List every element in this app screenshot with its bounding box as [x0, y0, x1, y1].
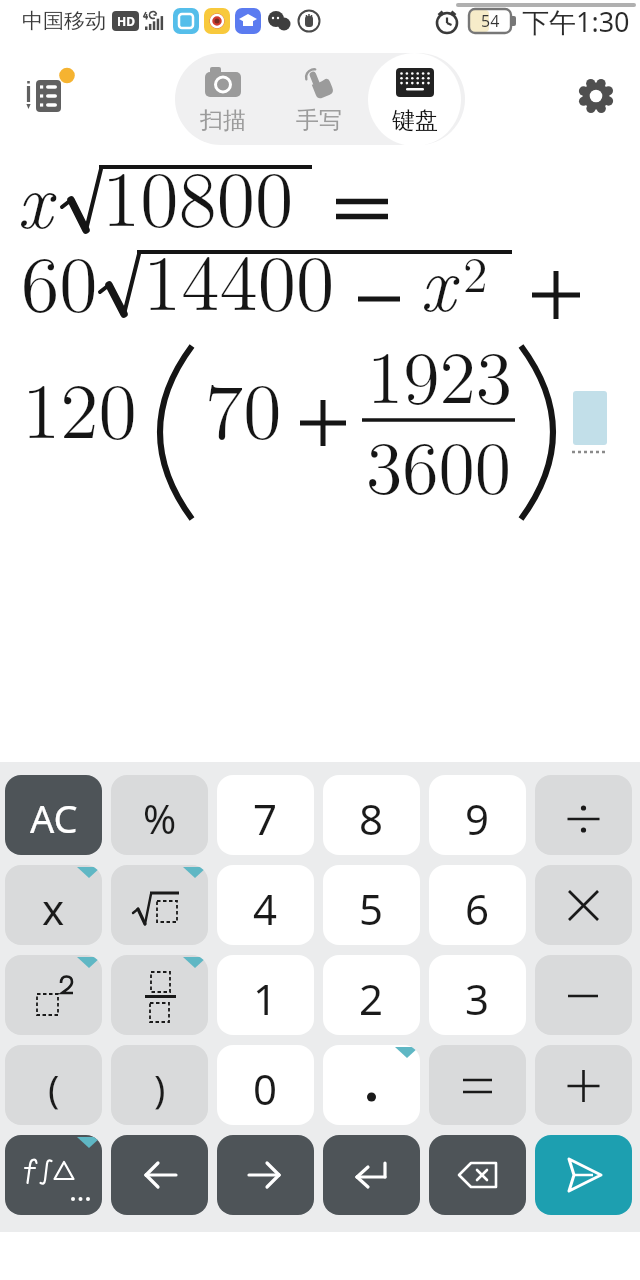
staticText: 手写: [296, 106, 342, 135]
button[interactable]: 8: [323, 775, 420, 855]
button[interactable]: 扫描: [175, 53, 271, 145]
staticText: HD: [117, 13, 135, 29]
staticText: 7: [253, 790, 278, 847]
staticText: 6: [465, 880, 490, 937]
staticText: 扫描: [200, 106, 246, 135]
staticText: %: [143, 791, 177, 845]
staticText: 中国移动: [22, 8, 106, 34]
button[interactable]: [111, 955, 208, 1035]
staticText: 54: [481, 10, 500, 32]
button[interactable]: [429, 1045, 526, 1125]
staticText: 9: [465, 790, 490, 847]
button[interactable]: [535, 955, 632, 1035]
button[interactable]: [20, 69, 72, 121]
button[interactable]: (: [5, 1045, 102, 1125]
button[interactable]: 手写: [271, 53, 367, 145]
button[interactable]: [577, 77, 615, 115]
button[interactable]: [5, 1135, 102, 1215]
button[interactable]: %: [111, 775, 208, 855]
button[interactable]: 7: [217, 775, 314, 855]
button[interactable]: 6: [429, 865, 526, 945]
button[interactable]: 9: [429, 775, 526, 855]
button[interactable]: 3: [429, 955, 526, 1035]
staticText: 8: [359, 790, 384, 847]
staticText: 下午1:30: [522, 3, 630, 40]
staticText: (: [48, 1062, 60, 1114]
button[interactable]: [535, 775, 632, 855]
staticText: 5: [359, 880, 384, 937]
button[interactable]: 0: [217, 1045, 314, 1125]
staticText: 键盘: [392, 106, 438, 135]
button[interactable]: ): [111, 1045, 208, 1125]
button[interactable]: [323, 1045, 420, 1125]
staticText: 0: [253, 1060, 278, 1117]
staticText: ): [154, 1062, 166, 1114]
button[interactable]: 2: [323, 955, 420, 1035]
button[interactable]: [429, 1135, 526, 1215]
button[interactable]: 1: [217, 955, 314, 1035]
staticText: 4: [253, 880, 278, 937]
button[interactable]: [535, 1045, 632, 1125]
button[interactable]: [111, 865, 208, 945]
staticText: 3: [465, 970, 490, 1027]
button[interactable]: [535, 865, 632, 945]
staticText: 1: [253, 970, 278, 1027]
button[interactable]: [535, 1135, 632, 1215]
button[interactable]: 键盘: [367, 53, 463, 145]
button[interactable]: [217, 1135, 314, 1215]
button[interactable]: [323, 1135, 420, 1215]
button[interactable]: [5, 955, 102, 1035]
button[interactable]: [111, 1135, 208, 1215]
button[interactable]: 5: [323, 865, 420, 945]
button[interactable]: 4: [217, 865, 314, 945]
staticText: x: [42, 880, 65, 937]
staticText: 2: [359, 970, 384, 1027]
button[interactable]: x: [5, 865, 102, 945]
staticText: AC: [30, 792, 78, 844]
button[interactable]: AC: [5, 775, 102, 855]
